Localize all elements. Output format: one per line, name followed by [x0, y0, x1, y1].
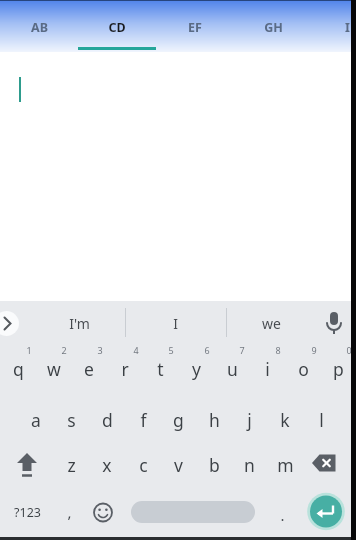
staticText: f: [140, 408, 147, 432]
staticText: z: [67, 453, 76, 477]
staticText: 6: [204, 344, 210, 356]
staticText: b: [209, 453, 220, 477]
button[interactable]: [89, 489, 124, 537]
button[interactable]: [0, 441, 53, 489]
staticText: w: [47, 357, 61, 381]
button[interactable]: t: [142, 345, 178, 393]
button[interactable]: EF: [156, 4, 234, 50]
button[interactable]: I'm: [34, 305, 124, 341]
button[interactable]: j: [231, 396, 267, 444]
staticText: h: [209, 408, 220, 432]
staticText: j: [247, 408, 252, 432]
staticText: 8: [275, 344, 281, 356]
button[interactable]: [303, 489, 356, 537]
button[interactable]: [0, 311, 19, 336]
button[interactable]: we: [226, 305, 316, 341]
button[interactable]: l: [303, 396, 339, 444]
button[interactable]: r: [107, 345, 143, 393]
button[interactable]: CD: [78, 4, 156, 50]
button[interactable]: g: [160, 396, 196, 444]
button[interactable]: [131, 501, 255, 523]
button[interactable]: m: [267, 441, 303, 489]
staticText: CD: [108, 19, 126, 36]
button[interactable]: ,: [52, 488, 87, 536]
staticText: a: [31, 408, 41, 432]
staticText: 7: [239, 344, 245, 356]
staticText: x: [102, 453, 112, 477]
button[interactable]: d: [89, 396, 125, 444]
button[interactable]: n: [231, 441, 267, 489]
button[interactable]: b: [196, 441, 232, 489]
staticText: r: [121, 357, 129, 381]
button[interactable]: i: [249, 345, 285, 393]
staticText: u: [227, 357, 238, 381]
button[interactable]: ?123: [1, 488, 54, 536]
button[interactable]: [318, 307, 350, 339]
staticText: ,: [67, 502, 72, 522]
staticText: 4: [133, 344, 139, 356]
button[interactable]: .: [265, 491, 300, 539]
button[interactable]: w: [36, 345, 72, 393]
staticText: c: [139, 453, 148, 477]
staticText: g: [173, 408, 184, 432]
staticText: EF: [188, 19, 202, 36]
staticText: 1: [26, 344, 32, 356]
staticText: .: [280, 505, 285, 525]
staticText: i: [265, 357, 270, 381]
staticText: 2: [61, 344, 67, 356]
button[interactable]: z: [53, 441, 89, 489]
button[interactable]: e: [71, 345, 107, 393]
staticText: I: [173, 314, 178, 333]
staticText: y: [192, 357, 201, 381]
staticText: ?123: [14, 504, 41, 521]
staticText: v: [174, 453, 183, 477]
staticText: e: [84, 357, 94, 381]
staticText: o: [298, 357, 309, 381]
staticText: l: [319, 408, 324, 432]
button[interactable]: o: [285, 345, 321, 393]
staticText: 3: [97, 344, 103, 356]
staticText: n: [244, 453, 255, 477]
staticText: s: [67, 408, 76, 432]
button[interactable]: GH: [234, 4, 312, 50]
button[interactable]: k: [267, 396, 303, 444]
staticText: d: [102, 408, 113, 432]
staticText: 5: [168, 344, 174, 356]
staticText: I: [345, 19, 350, 36]
button[interactable]: x: [89, 441, 125, 489]
staticText: we: [262, 314, 281, 333]
staticText: GH: [264, 19, 283, 36]
staticText: m: [277, 453, 294, 477]
button[interactable]: u: [214, 345, 250, 393]
staticText: k: [280, 408, 290, 432]
staticText: p: [333, 357, 344, 381]
button[interactable]: h: [196, 396, 232, 444]
staticText: q: [13, 357, 24, 381]
button[interactable]: v: [160, 441, 196, 489]
staticText: t: [157, 357, 164, 381]
button[interactable]: AB: [0, 4, 78, 50]
button[interactable]: I: [308, 4, 356, 50]
button[interactable]: I: [130, 305, 220, 341]
button[interactable]: y: [178, 345, 214, 393]
staticText: I'm: [69, 314, 90, 333]
button[interactable]: c: [125, 441, 161, 489]
button[interactable]: s: [53, 396, 89, 444]
button[interactable]: a: [18, 396, 54, 444]
button[interactable]: p: [320, 345, 356, 393]
staticText: 0: [346, 344, 352, 356]
staticText: 9: [311, 344, 317, 356]
staticText: AB: [31, 19, 48, 36]
button[interactable]: f: [125, 396, 161, 444]
button[interactable]: q: [0, 345, 36, 393]
button[interactable]: [303, 441, 356, 489]
